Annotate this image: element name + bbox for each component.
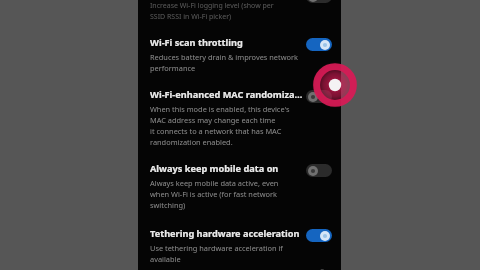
staticText: performance (150, 63, 196, 73)
button[interactable]: Always keep mobile data on (138, 160, 341, 211)
staticText: Wi-Fi-enhanced MAC randomiza… (150, 88, 303, 101)
button[interactable]: Toggle on (306, 38, 332, 51)
button[interactable]: Toggle off (306, 90, 332, 103)
staticText: when Wi-Fi is active (for fast network (150, 189, 278, 199)
staticText: SSID RSSI in Wi-Fi picker) (150, 12, 232, 22)
staticText: Increase Wi-Fi logging level (show per (150, 1, 274, 11)
staticText: Always keep mobile data active, even (150, 178, 279, 188)
button[interactable]: Toggle on (306, 229, 332, 242)
staticText: Reduces battery drain & improves network (150, 52, 298, 62)
button[interactable]: Toggle off (306, 0, 332, 3)
staticText: Tethering hardware acceleration (150, 227, 300, 240)
staticText: it connects to a network that has MAC (150, 126, 282, 136)
button[interactable]: Tethering hardware acceleration (138, 225, 341, 265)
staticText: randomization enabled. (150, 137, 233, 147)
button[interactable]: Wi-Fi scan throttling (138, 34, 341, 74)
button[interactable]: Increase Wi-Fi logging level (show per (138, 0, 341, 26)
staticText: Always keep mobile data on (150, 162, 279, 175)
staticText: When this mode is enabled, this device's (150, 104, 290, 114)
button[interactable]: Toggle off (306, 164, 332, 177)
staticText: Wi-Fi scan throttling (150, 36, 243, 49)
staticText: available (150, 254, 181, 264)
staticText: MAC address may change each time (150, 115, 276, 125)
staticText: Use tethering hardware acceleration if (150, 243, 283, 253)
button[interactable]: Wi-Fi-enhanced MAC randomiza… (138, 86, 341, 148)
staticText: switching) (150, 200, 186, 210)
